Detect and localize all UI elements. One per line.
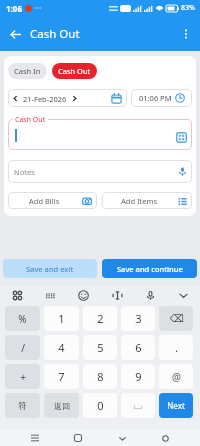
button[interactable]: Back [0, 19, 30, 49]
button[interactable]: / [5, 335, 40, 360]
staticText: Save and exit [26, 264, 74, 274]
button[interactable]: Apps [7, 286, 27, 304]
button[interactable]: Add Bills [8, 192, 97, 209]
button[interactable]: 0 [83, 393, 117, 418]
button[interactable]: Home [70, 430, 86, 446]
button[interactable]: % [5, 306, 40, 331]
button[interactable]: 7 [44, 364, 79, 389]
staticText: 21-Feb-2026 [23, 94, 67, 104]
button[interactable]: Keyboard layout [40, 286, 60, 304]
staticText: 8 [97, 369, 104, 384]
staticText: Cash Out [58, 66, 91, 76]
button[interactable]: Voice input [140, 286, 160, 304]
button[interactable]: 6 [121, 335, 155, 360]
staticText: Cash In [14, 66, 41, 76]
button[interactable]: Text editing [107, 286, 127, 304]
staticText: Save and continue [117, 264, 183, 274]
button[interactable]: @ [159, 364, 193, 389]
button[interactable]: 4 [44, 335, 79, 360]
staticText: . [175, 340, 178, 355]
button[interactable]: 01:06 PM [131, 89, 192, 107]
button[interactable]: Hide keyboard [173, 286, 193, 304]
staticText: Add Bills [29, 196, 60, 206]
button[interactable]: Add Items [102, 192, 192, 209]
button[interactable]: 返回 [44, 393, 79, 418]
staticText: 3 [135, 311, 142, 326]
button[interactable]: 9 [121, 364, 155, 389]
button[interactable]: 3 [121, 306, 155, 331]
button[interactable]: Pin [157, 430, 173, 446]
staticText: ⌫ [169, 313, 184, 325]
button[interactable]: Save and continue [102, 259, 197, 278]
staticText: 符 [18, 400, 27, 411]
staticText: 返回 [54, 401, 70, 411]
staticText: 01:06 PM [139, 93, 172, 103]
staticText: @ [172, 370, 181, 384]
button[interactable]: 5 [83, 335, 117, 360]
staticText: Cash Out [30, 26, 80, 42]
staticText: 7 [58, 369, 65, 384]
button[interactable]: 8 [83, 364, 117, 389]
button[interactable]: Recents [27, 430, 43, 446]
button[interactable]: Emoji [73, 286, 93, 304]
staticText: % [18, 312, 27, 326]
button[interactable]: 1 [44, 306, 79, 331]
staticText: / [21, 341, 25, 355]
button[interactable]: 符 [5, 393, 40, 418]
button[interactable]: + [5, 364, 40, 389]
staticText: 0 [97, 398, 104, 413]
button[interactable]: 2 [83, 306, 117, 331]
staticText: 5 [97, 340, 104, 355]
staticText: Next [167, 400, 185, 411]
staticText: 2 [97, 311, 104, 326]
staticText: Notes [14, 167, 35, 177]
button[interactable]: Notes [8, 160, 192, 183]
button[interactable]: . [159, 335, 193, 360]
button[interactable]: Save and exit [3, 259, 97, 278]
staticText: Cash Out [15, 115, 46, 125]
staticText: ⌴ [134, 401, 142, 411]
staticText: 1:06 [6, 3, 22, 14]
staticText: 9 [135, 369, 142, 384]
button[interactable]: 21-Feb-2026 [8, 89, 127, 107]
staticText: + [20, 370, 26, 384]
button[interactable]: ⌴ [121, 393, 155, 418]
button[interactable]: More options [172, 20, 200, 48]
staticText: 83% [181, 3, 195, 13]
staticText: 1 [58, 311, 65, 326]
button[interactable]: Cash In [8, 63, 47, 79]
staticText: 4 [58, 340, 65, 355]
button[interactable]: Next [159, 393, 193, 418]
button[interactable]: ⌫ [159, 306, 193, 331]
staticText: 6 [135, 340, 142, 355]
staticText: Add Items [121, 196, 158, 206]
button[interactable]: Cash Out [52, 63, 97, 79]
button[interactable]: Back [114, 430, 130, 446]
